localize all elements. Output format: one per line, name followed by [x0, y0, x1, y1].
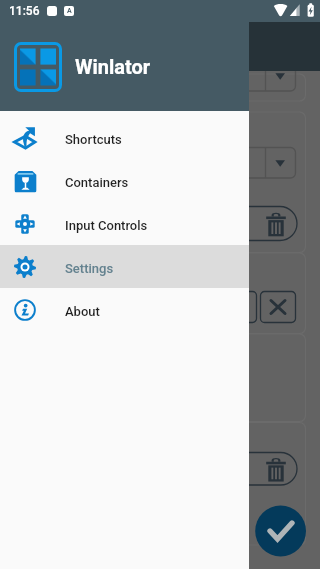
staticText: Winlator	[75, 55, 151, 78]
button[interactable]: About	[0, 288, 249, 331]
staticText: Shortcuts	[65, 132, 122, 147]
button[interactable]: Shortcuts	[0, 116, 249, 159]
staticText: Settings	[65, 261, 114, 276]
button[interactable]: Containers	[0, 159, 249, 202]
staticText: Containers	[65, 175, 129, 190]
button[interactable]: Input Controls	[0, 202, 249, 245]
button[interactable]: Settings	[0, 245, 249, 288]
staticText: 11:56	[9, 4, 40, 18]
staticText: Input Controls	[65, 218, 148, 233]
staticText: A	[67, 7, 72, 15]
staticText: About	[65, 304, 100, 319]
